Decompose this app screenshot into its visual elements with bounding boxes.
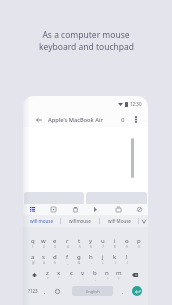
button[interactable]: v (77, 267, 89, 283)
button[interactable]: i (109, 235, 121, 251)
button[interactable]: More options (131, 115, 140, 124)
button[interactable]: k (109, 251, 121, 267)
staticText: ( (115, 261, 116, 265)
staticText: o (125, 237, 129, 245)
staticText: keyboard and touchpad (39, 41, 134, 53)
staticText: q (31, 237, 35, 245)
staticText: w (41, 237, 46, 245)
button[interactable]: Keyboard tool 2 (68, 204, 82, 215)
button[interactable]: Backspace (125, 267, 145, 283)
button[interactable]: Enter (132, 286, 142, 296)
button[interactable]: Keyboard tool 1 (46, 204, 60, 215)
button[interactable]: f (61, 251, 73, 267)
button[interactable]: q (27, 235, 38, 251)
staticText: 0 (121, 116, 125, 124)
staticText: g (77, 253, 81, 261)
staticText: + (102, 261, 104, 265)
button[interactable]: wifi mouse (23, 215, 60, 227)
button[interactable]: j (97, 251, 109, 267)
button[interactable]: s (38, 251, 49, 267)
button[interactable]: r (61, 235, 73, 251)
staticText: Apple’s MacBook Air (48, 116, 103, 124)
staticText: a (31, 253, 35, 261)
staticText: l (126, 253, 128, 261)
staticText: @ (32, 261, 35, 265)
staticText: ! (107, 277, 108, 281)
staticText: d (53, 253, 57, 261)
button[interactable]: ?123 (25, 283, 41, 299)
staticText: b (93, 269, 97, 277)
button[interactable]: More suggestions (139, 215, 148, 227)
button[interactable]: wifimouse (61, 215, 99, 227)
staticText: t (78, 237, 81, 245)
staticText: s (42, 253, 45, 261)
staticText: h (89, 253, 93, 261)
staticText: 0 (138, 245, 140, 249)
staticText: 7 (102, 245, 104, 249)
staticText: - (91, 261, 92, 265)
staticText: 2 (43, 245, 45, 249)
staticText: 12:30 (130, 101, 142, 107)
staticText: : (83, 277, 84, 281)
staticText: m (116, 269, 122, 277)
staticText: i (114, 237, 116, 245)
staticText: _ (67, 261, 69, 265)
button[interactable]: t (73, 235, 85, 251)
button[interactable]: l (121, 251, 133, 267)
button[interactable]: . (118, 283, 128, 299)
staticText: $ (54, 261, 56, 265)
button[interactable]: Emoji (49, 283, 65, 299)
button[interactable]: c (65, 267, 77, 283)
button[interactable]: x (53, 267, 65, 283)
button[interactable]: w (38, 235, 49, 251)
button[interactable]: u (97, 235, 109, 251)
button[interactable]: e (49, 235, 61, 251)
staticText: As a computer mouse (42, 29, 130, 41)
staticText: 5 (79, 245, 81, 249)
staticText: e (53, 237, 57, 245)
staticText: 9 (126, 245, 128, 249)
staticText: . (122, 288, 124, 295)
button[interactable]: Keyboard tool 5 (132, 204, 146, 215)
staticText: n (105, 269, 109, 277)
staticText: r (66, 237, 69, 245)
button[interactable]: Keyboard tool 0 (25, 204, 39, 215)
staticText: , (44, 288, 46, 295)
staticText: 6 (90, 245, 92, 249)
button[interactable]: , (41, 283, 49, 299)
button[interactable]: wifi Mouse (100, 215, 138, 227)
staticText: k (113, 253, 117, 261)
button[interactable]: Shift (27, 267, 42, 283)
staticText: y (89, 237, 93, 245)
staticText: ) (127, 261, 128, 265)
button[interactable]: p (133, 235, 145, 251)
button[interactable]: b (89, 267, 101, 283)
staticText: c (70, 269, 73, 277)
button[interactable]: h (85, 251, 97, 267)
staticText: ?123 (28, 288, 38, 294)
staticText: v (81, 269, 85, 277)
button[interactable]: z (42, 267, 53, 283)
staticText: p (137, 237, 141, 245)
button[interactable]: m (113, 267, 125, 283)
button[interactable]: g (73, 251, 85, 267)
button[interactable]: o (121, 235, 133, 251)
staticText: 8 (114, 245, 116, 249)
button[interactable]: Keyboard tool 3 (89, 204, 103, 215)
staticText: English (86, 289, 100, 294)
button[interactable]: English (72, 286, 113, 296)
button[interactable]: Back (33, 114, 44, 125)
staticText: z (46, 269, 49, 277)
staticText: f (66, 253, 69, 261)
staticText: ; (95, 277, 96, 281)
button[interactable]: a (27, 251, 38, 267)
staticText: # (43, 261, 45, 265)
button[interactable]: d (49, 251, 61, 267)
staticText: wifi Mouse (108, 218, 131, 224)
button[interactable]: n (101, 267, 113, 283)
button[interactable]: y (85, 235, 97, 251)
staticText: ? (118, 277, 120, 281)
button[interactable]: Keyboard tool 4 (111, 204, 125, 215)
